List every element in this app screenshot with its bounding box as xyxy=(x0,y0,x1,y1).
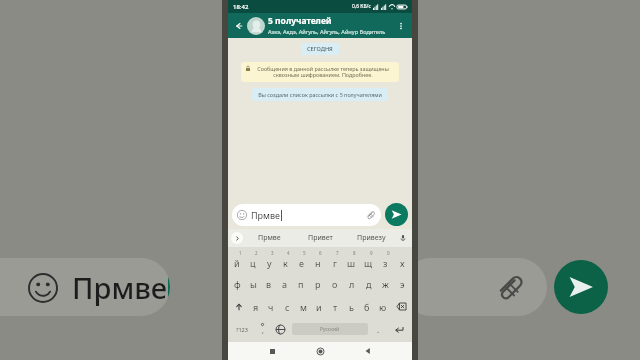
staticText: ф xyxy=(234,278,241,290)
button[interactable]: б xyxy=(359,295,375,318)
staticText: Сообщения в данной рассылке теперь защищ… xyxy=(252,65,394,79)
staticText: ч xyxy=(268,301,274,313)
button[interactable]: р xyxy=(309,272,326,295)
button[interactable]: 3 xyxy=(261,249,277,272)
button[interactable]: ы xyxy=(245,272,261,295)
button[interactable]: ж xyxy=(377,272,394,295)
staticText: ц xyxy=(250,257,256,269)
button[interactable]: о xyxy=(326,272,343,295)
button[interactable]: Group photo xyxy=(247,17,265,35)
button[interactable]: д xyxy=(360,272,377,295)
button[interactable]: . xyxy=(370,318,387,340)
button[interactable]: Back xyxy=(231,18,247,34)
staticText: й xyxy=(234,257,240,269)
button[interactable]: Enter xyxy=(387,318,411,340)
staticText: 2 xyxy=(255,250,258,256)
button[interactable]: а xyxy=(277,272,293,295)
button[interactable]: э xyxy=(394,272,411,295)
button[interactable]: Attach xyxy=(402,258,547,316)
button[interactable]: Change language xyxy=(271,318,290,340)
staticText: и xyxy=(316,301,322,313)
staticText: т xyxy=(333,301,338,313)
button[interactable]: Прмве xyxy=(0,258,170,316)
button[interactable]: 4 xyxy=(277,249,293,272)
button[interactable]: 9 xyxy=(360,249,377,272)
staticText: н xyxy=(315,257,321,269)
staticText: 3 xyxy=(271,250,274,256)
staticText: ?123 xyxy=(236,326,248,333)
staticText: я xyxy=(253,301,259,313)
staticText: 4 xyxy=(287,250,290,256)
button[interactable]: Attach xyxy=(493,272,523,302)
button[interactable]: Home xyxy=(307,342,333,360)
staticText: 0,6 КБ/с xyxy=(352,3,371,10)
button[interactable]: и xyxy=(311,295,327,318)
button[interactable]: Прмве xyxy=(243,229,295,247)
staticText: 7 xyxy=(336,250,339,256)
button[interactable]: 6 xyxy=(309,249,326,272)
staticText: е xyxy=(299,257,304,269)
button[interactable]: Back xyxy=(355,342,381,360)
staticText: б xyxy=(364,301,370,313)
button[interactable]: 7 xyxy=(326,249,343,272)
button[interactable]: ч xyxy=(263,295,279,318)
staticText: ю xyxy=(379,301,387,313)
button[interactable]: т xyxy=(327,295,343,318)
button[interactable]: Send xyxy=(554,260,608,314)
button[interactable]: х xyxy=(394,249,411,272)
button[interactable]: Backspace xyxy=(391,295,411,318)
staticText: м xyxy=(300,301,307,313)
staticText: г xyxy=(333,257,337,269)
button[interactable]: , xyxy=(254,318,271,340)
button[interactable]: Voice input xyxy=(397,232,409,244)
button[interactable]: 5 xyxy=(293,249,309,272)
staticText: у xyxy=(267,257,272,269)
button[interactable]: 5 получателей xyxy=(268,15,393,36)
staticText: 0 xyxy=(387,250,390,256)
button[interactable]: я xyxy=(248,295,263,318)
button[interactable]: 2 xyxy=(245,249,261,272)
staticText: . xyxy=(377,324,380,335)
button[interactable]: л xyxy=(343,272,360,295)
staticText: 1 xyxy=(239,250,242,256)
button[interactable]: ф xyxy=(229,272,245,295)
staticText: о xyxy=(332,278,338,290)
staticText: 5 xyxy=(303,250,306,256)
staticText: Привезу xyxy=(357,233,386,243)
button[interactable]: Recent apps xyxy=(259,342,285,360)
button[interactable]: Shift xyxy=(229,295,248,318)
button[interactable]: в xyxy=(261,272,277,295)
staticText: 9 xyxy=(370,250,373,256)
button[interactable]: Expand suggestions xyxy=(231,232,243,244)
button[interactable]: п xyxy=(293,272,309,295)
staticText: , xyxy=(262,326,264,336)
button[interactable]: ь xyxy=(343,295,359,318)
button[interactable]: Привет xyxy=(295,229,346,247)
button[interactable]: с xyxy=(279,295,295,318)
staticText: л xyxy=(349,278,355,290)
staticText: х xyxy=(400,257,405,269)
button[interactable]: Прмве xyxy=(232,204,381,226)
button[interactable]: ?123 xyxy=(229,318,254,340)
button[interactable]: 1 xyxy=(229,249,245,272)
staticText: Прмве xyxy=(258,233,281,243)
button[interactable]: More options xyxy=(393,18,409,34)
button[interactable]: Вы создали список рассылки с 5 получател… xyxy=(252,88,388,101)
button[interactable]: м xyxy=(295,295,311,318)
button[interactable]: Привезу xyxy=(346,229,397,247)
button[interactable]: Русский xyxy=(292,323,368,335)
button[interactable]: Send xyxy=(385,203,408,226)
button[interactable]: 8 xyxy=(343,249,360,272)
staticText: Прмве xyxy=(72,268,168,307)
staticText: в xyxy=(266,278,272,290)
button[interactable]: Сообщения в данной рассылке теперь защищ… xyxy=(241,62,399,82)
staticText: з xyxy=(383,257,388,269)
staticText: р xyxy=(315,278,321,290)
staticText: а xyxy=(282,278,288,290)
button[interactable]: ю xyxy=(375,295,391,318)
button[interactable]: Attach xyxy=(364,209,376,221)
staticText: э xyxy=(400,278,405,290)
staticText: ж xyxy=(382,278,389,290)
button[interactable]: 0 xyxy=(377,249,394,272)
staticText: Прмве xyxy=(251,209,281,221)
